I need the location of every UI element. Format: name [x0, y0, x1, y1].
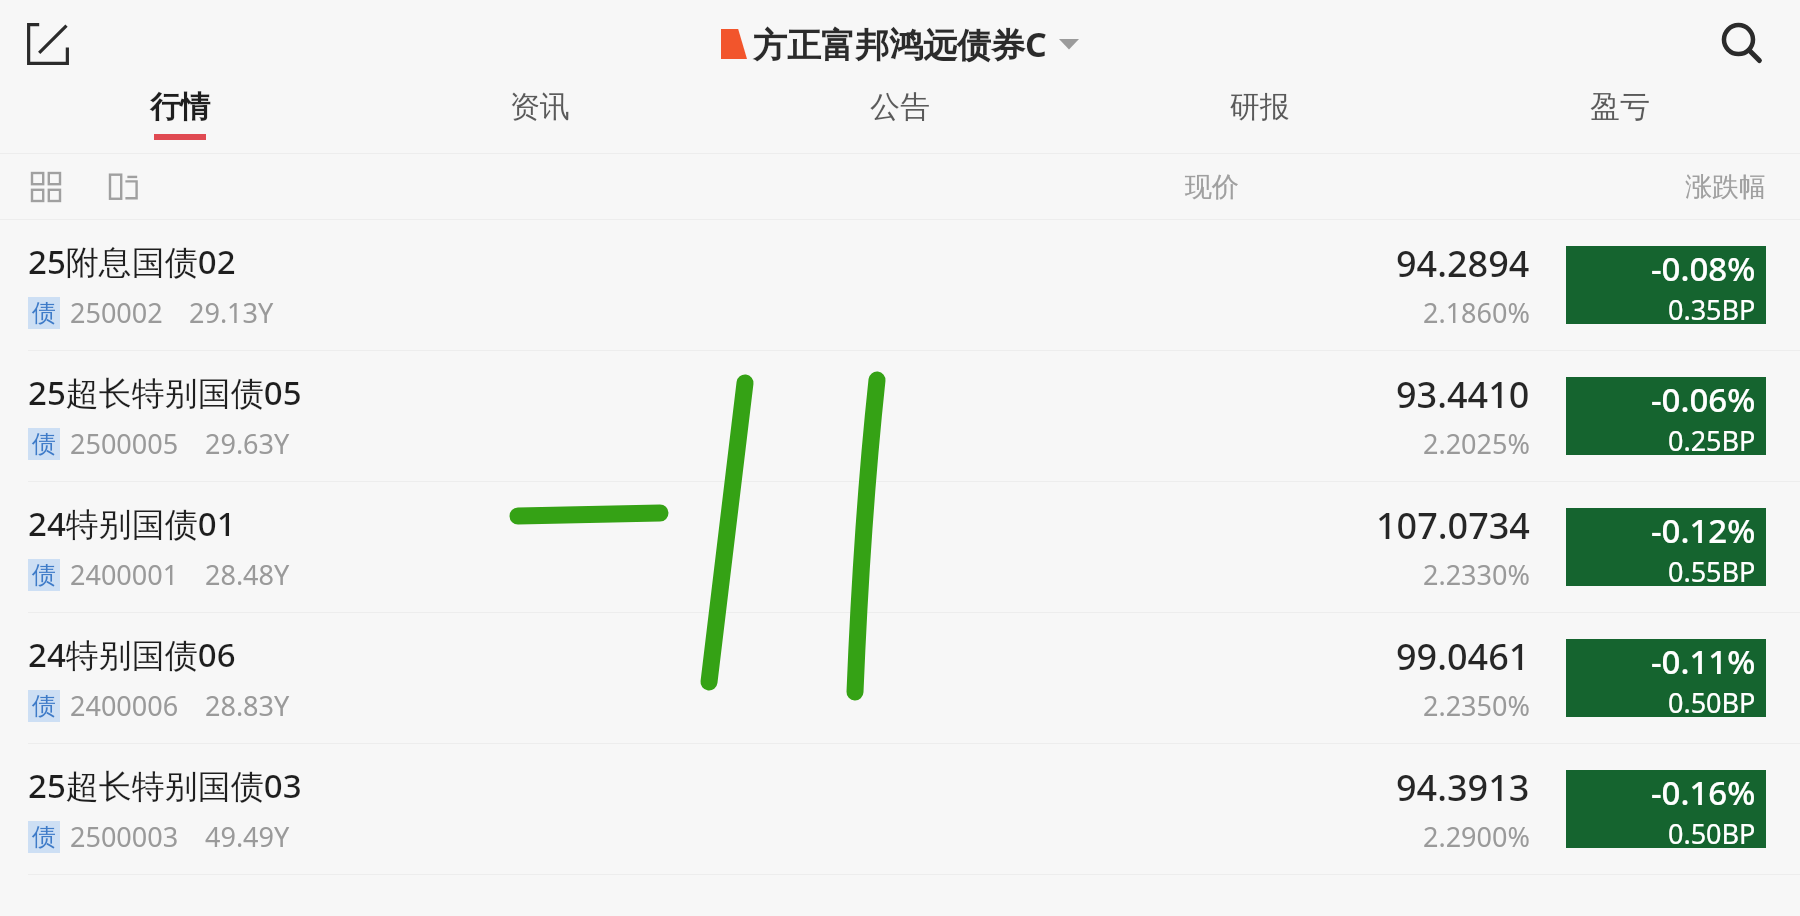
button[interactable]: 24特别国债01: [0, 482, 1800, 612]
staticText: 25超长特别国债05: [28, 370, 302, 415]
staticText: 债: [32, 560, 56, 590]
staticText: 资讯: [510, 88, 570, 126]
staticText: -0.11%: [1651, 639, 1756, 684]
button[interactable]: 25附息国债02: [0, 220, 1800, 350]
button[interactable]: 盈亏: [1440, 88, 1800, 154]
button[interactable]: 行情: [0, 88, 360, 154]
staticText: 107.0734: [1376, 501, 1530, 550]
staticText: 2.1860%: [1423, 294, 1530, 331]
staticText: 2.2350%: [1423, 687, 1530, 724]
staticText: 24特别国债06: [28, 632, 236, 677]
staticText: 250002: [70, 294, 163, 331]
button[interactable]: 24特别国债06: [0, 613, 1800, 743]
staticText: 债: [32, 691, 56, 721]
staticText: 2.2900%: [1423, 818, 1530, 855]
staticText: 24特别国债01: [28, 501, 236, 546]
button[interactable]: Switch layout: [104, 167, 144, 207]
button[interactable]: Grid view: [26, 167, 66, 207]
staticText: 0.50BP: [1668, 815, 1756, 848]
button[interactable]: 研报: [1080, 88, 1440, 154]
staticText: 2500003: [70, 818, 179, 855]
button[interactable]: 25超长特别国债05: [0, 351, 1800, 481]
button[interactable]: 公告: [720, 88, 1080, 154]
staticText: 28.48Y: [205, 556, 290, 593]
staticText: 债: [32, 822, 56, 852]
staticText: 2.2330%: [1423, 556, 1530, 593]
staticText: 29.63Y: [205, 425, 290, 462]
staticText: 2400006: [70, 687, 179, 724]
button[interactable]: 25超长特别国债03: [0, 744, 1800, 874]
staticText: 25超长特别国债03: [28, 763, 302, 808]
staticText: 94.3913: [1396, 763, 1530, 812]
staticText: 99.0461: [1396, 632, 1530, 681]
staticText: 行情: [150, 88, 210, 126]
staticText: 0.55BP: [1668, 553, 1756, 586]
staticText: -0.06%: [1651, 377, 1756, 422]
staticText: 研报: [1230, 88, 1290, 126]
staticText: 盈亏: [1590, 88, 1650, 126]
staticText: 现价: [1185, 170, 1239, 204]
staticText: 公告: [870, 88, 930, 126]
staticText: 0.50BP: [1668, 684, 1756, 717]
button[interactable]: Edit watchlist: [22, 18, 74, 70]
staticText: 2.2025%: [1423, 425, 1530, 462]
staticText: 0.25BP: [1668, 422, 1756, 455]
button[interactable]: 方正富邦鸿远债券C: [721, 21, 1079, 67]
staticText: 94.2894: [1396, 239, 1530, 288]
staticText: 方正富邦鸿远债券C: [753, 21, 1047, 67]
staticText: 93.4410: [1396, 370, 1530, 419]
staticText: 28.83Y: [205, 687, 290, 724]
staticText: 49.49Y: [205, 818, 290, 855]
staticText: 债: [32, 298, 56, 328]
staticText: 2400001: [70, 556, 179, 593]
staticText: 0.35BP: [1668, 291, 1756, 324]
staticText: -0.16%: [1651, 770, 1756, 815]
staticText: 29.13Y: [189, 294, 274, 331]
staticText: 债: [32, 429, 56, 459]
staticText: -0.12%: [1651, 508, 1756, 553]
button[interactable]: Search: [1714, 16, 1770, 72]
staticText: -0.08%: [1651, 246, 1756, 291]
staticText: 涨跌幅: [1685, 170, 1766, 204]
staticText: 2500005: [70, 425, 179, 462]
button[interactable]: 资讯: [360, 88, 720, 154]
staticText: 25附息国债02: [28, 239, 236, 284]
